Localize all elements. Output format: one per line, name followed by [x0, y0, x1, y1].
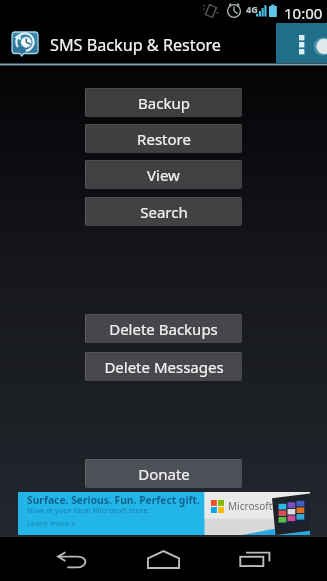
- button[interactable]: More options: [276, 23, 327, 63]
- button[interactable]: Delete Backups: [85, 314, 242, 343]
- staticText: Microsoft: [228, 499, 273, 513]
- button[interactable]: View: [85, 160, 242, 189]
- staticText: Surface. Serious. Fun. Perfect gift.: [27, 493, 200, 507]
- button[interactable]: Back: [26, 537, 117, 581]
- staticText: View: [147, 165, 180, 185]
- staticText: 10:00: [284, 3, 323, 23]
- button[interactable]: Surface. Serious. Fun. Perfect gift.: [18, 492, 310, 535]
- staticText: Search: [140, 202, 188, 222]
- staticText: Donate: [138, 464, 190, 484]
- button[interactable]: Donate: [85, 459, 242, 488]
- staticText: Backup: [138, 93, 190, 113]
- staticText: Delete Backups: [109, 319, 218, 339]
- staticText: Learn more »: [27, 518, 76, 529]
- button[interactable]: Delete Messages: [85, 352, 242, 381]
- button[interactable]: Home: [117, 537, 209, 581]
- staticText: 4G: [246, 3, 258, 15]
- staticText: SMS Backup & Restore: [50, 34, 221, 56]
- button[interactable]: Search: [85, 197, 242, 226]
- button[interactable]: Backup: [85, 88, 242, 117]
- button[interactable]: Restore: [85, 124, 242, 153]
- staticText: Now at your local Microsoft store.: [27, 505, 150, 516]
- staticText: Restore: [137, 129, 191, 149]
- button[interactable]: Recent apps: [209, 537, 301, 581]
- staticText: Delete Messages: [104, 357, 224, 377]
